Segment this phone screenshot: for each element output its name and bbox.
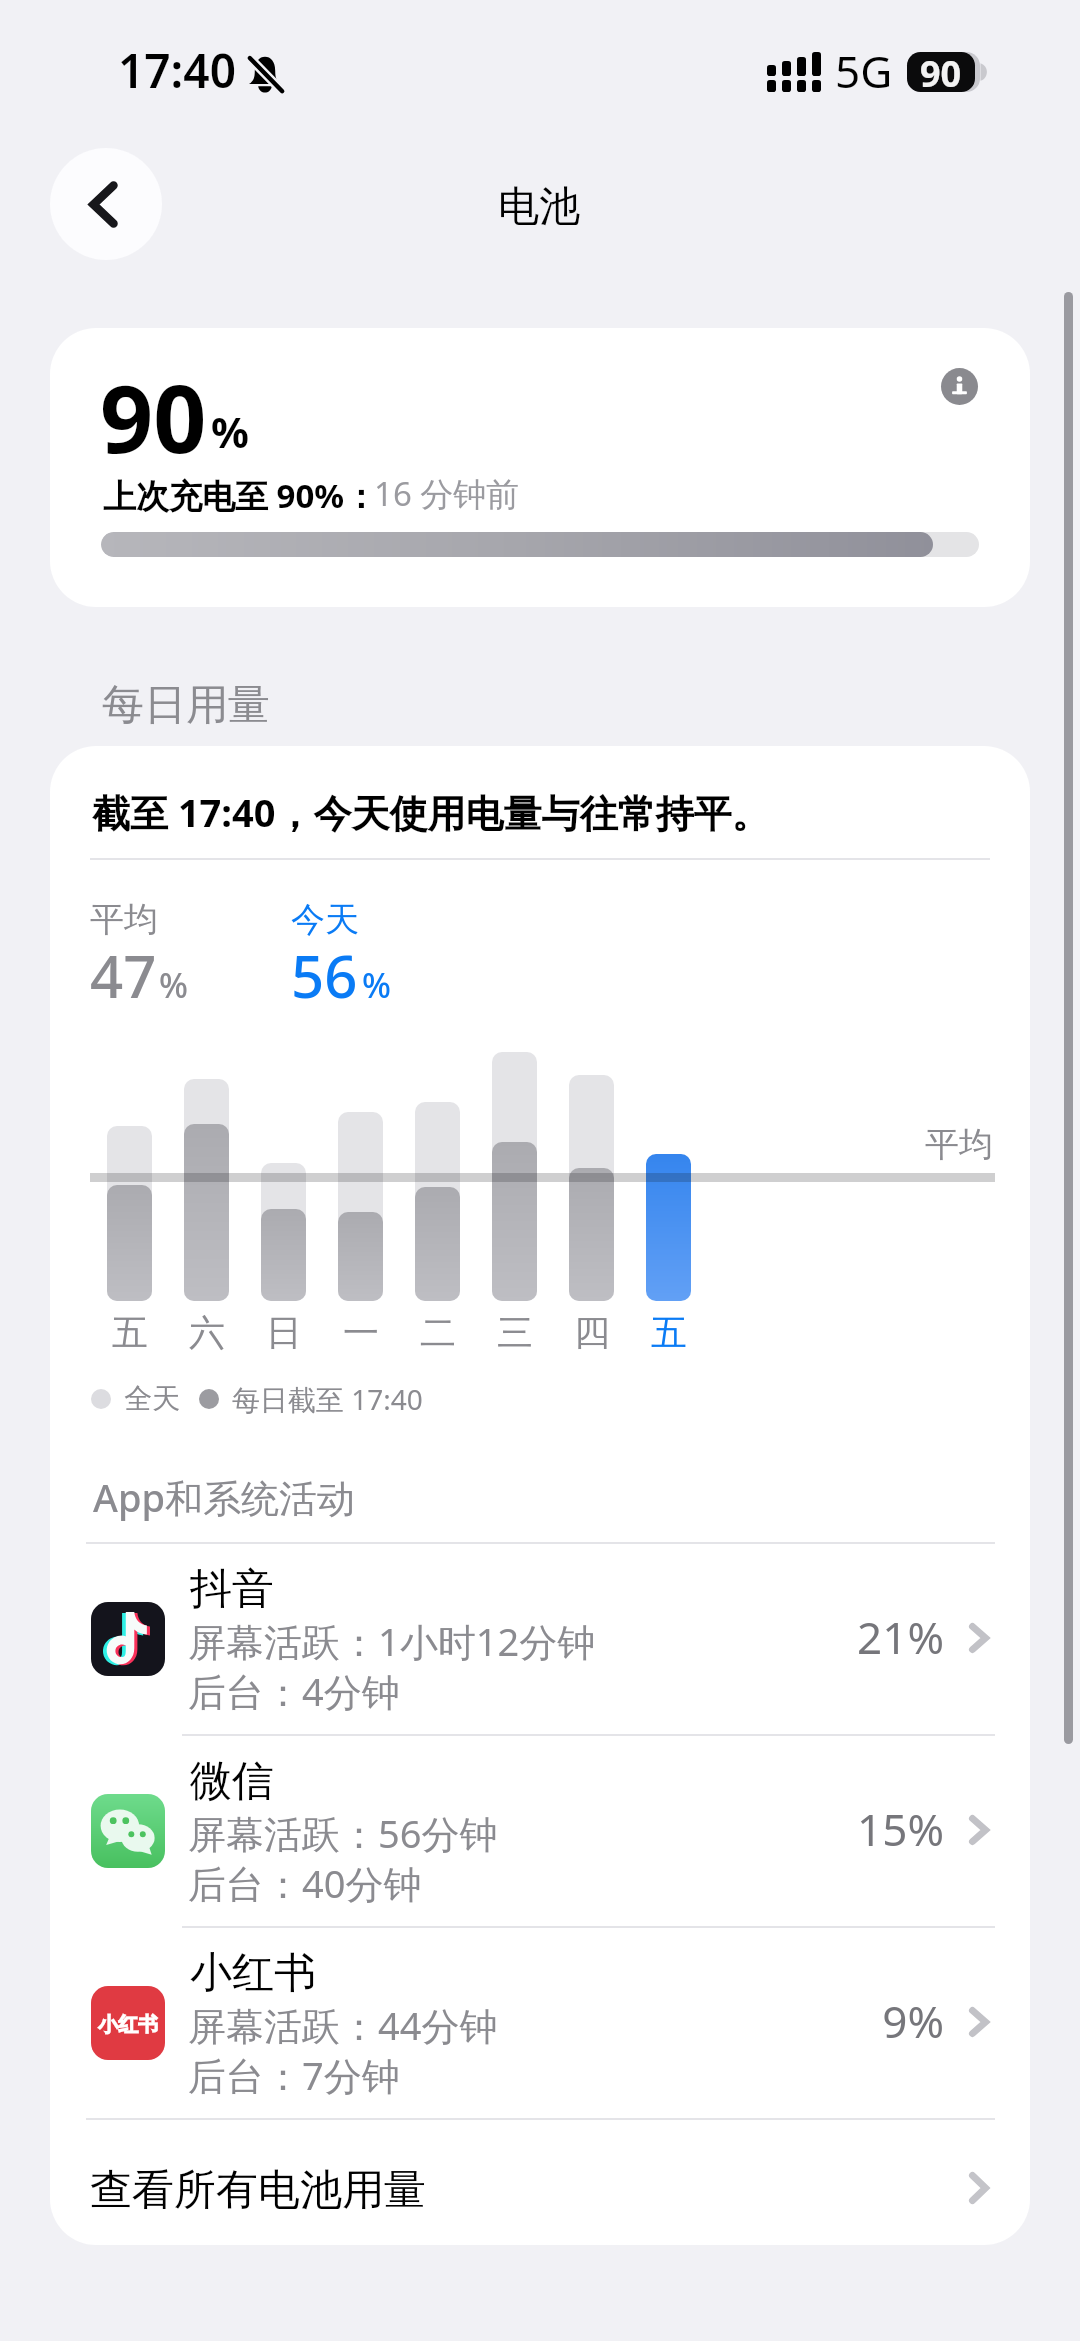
staticText: 90 <box>100 354 207 481</box>
staticText: 今天 <box>291 898 359 941</box>
staticText: 47 <box>90 936 157 1015</box>
staticText: 9% <box>882 1991 944 2051</box>
staticText: 后台：40分钟 <box>188 1857 422 1909</box>
staticText: 截至 17:40，今天使用电量与往常持平。 <box>92 786 770 838</box>
staticText: 16 分钟前 <box>374 471 520 516</box>
staticText: 5G <box>835 41 893 101</box>
button[interactable]: 返回 <box>50 148 162 260</box>
staticText: 15% <box>857 1799 944 1859</box>
staticText: 全天 <box>124 1381 180 1416</box>
staticText: 每日用量 <box>102 679 270 732</box>
staticText: 查看所有电池用量 <box>90 2164 426 2217</box>
staticText: 小红书 <box>98 2012 158 2037</box>
staticText: 21% <box>857 1607 944 1667</box>
staticText: 后台：4分钟 <box>188 1665 400 1717</box>
staticText: 屏幕活跃：44分钟 <box>188 1999 498 2051</box>
staticText: 四 <box>574 1310 610 1355</box>
staticText: 后台：7分钟 <box>188 2049 400 2101</box>
button[interactable]: 电池信息 <box>934 361 984 411</box>
staticText: 六 <box>189 1310 225 1355</box>
staticText: 上次充电至 90%： <box>103 473 378 518</box>
staticText: 90 <box>920 49 962 89</box>
button[interactable] <box>50 1542 1030 1734</box>
staticText: 每日截至 17:40 <box>232 1380 423 1418</box>
staticText: 17:40 <box>118 39 236 102</box>
staticText: 电池 <box>498 181 580 233</box>
button[interactable] <box>50 1734 1030 1926</box>
staticText: 五 <box>651 1310 687 1355</box>
staticText: 三 <box>497 1310 533 1355</box>
button[interactable] <box>50 1926 1030 2118</box>
staticText: % <box>362 962 391 1008</box>
staticText: 小红书 <box>190 1947 316 2000</box>
staticText: 屏幕活跃：1小时12分钟 <box>188 1615 596 1667</box>
staticText: 日 <box>266 1310 302 1355</box>
staticText: 屏幕活跃：56分钟 <box>188 1807 498 1859</box>
staticText: 二 <box>420 1310 456 1355</box>
staticText: % <box>159 962 188 1008</box>
staticText: 一 <box>343 1310 379 1355</box>
staticText: 五 <box>112 1310 148 1355</box>
staticText: 56 <box>291 936 358 1015</box>
staticText: 平均 <box>925 1123 993 1166</box>
staticText: % <box>211 403 249 460</box>
staticText: 微信 <box>190 1755 274 1808</box>
button[interactable]: 查看所有电池用量 <box>50 2118 1030 2245</box>
staticText: 平均 <box>90 898 158 941</box>
staticText: App和系统活动 <box>93 1471 356 1523</box>
staticText: 抖音 <box>190 1563 274 1616</box>
